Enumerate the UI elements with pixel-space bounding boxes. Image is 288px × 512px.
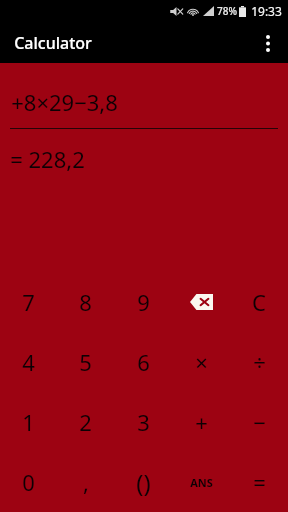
staticText: +8×29−3,8 — [11, 87, 118, 117]
staticText: 9 — [137, 287, 150, 317]
button[interactable]: More options — [248, 23, 288, 63]
staticText: × — [195, 347, 208, 377]
button[interactable]: ÷ — [230, 332, 288, 392]
staticText: () — [136, 466, 151, 499]
staticText: 8 — [79, 287, 92, 317]
button[interactable]: , — [57, 452, 114, 512]
staticText: 7 — [22, 287, 35, 317]
staticText: 19:33 — [251, 3, 282, 19]
staticText: 78% — [217, 4, 237, 18]
staticText: − — [253, 407, 266, 437]
button[interactable]: () — [114, 452, 172, 512]
button[interactable]: 1 — [0, 392, 57, 452]
staticText: 4 — [22, 347, 35, 377]
button[interactable]: 4 — [0, 332, 57, 392]
button[interactable]: − — [230, 392, 288, 452]
staticText: = — [253, 467, 266, 497]
staticText: C — [252, 287, 266, 317]
button[interactable]: Backspace — [172, 272, 230, 332]
button[interactable]: 6 — [114, 332, 172, 392]
staticText: 0 — [22, 467, 35, 497]
staticText: 1 — [22, 407, 35, 437]
staticText: = 228,2 — [10, 144, 85, 174]
staticText: 2 — [79, 407, 92, 437]
staticText: , — [83, 467, 89, 497]
staticText: + — [195, 407, 208, 437]
button[interactable]: × — [172, 332, 230, 392]
button[interactable]: 9 — [114, 272, 172, 332]
button[interactable]: 8 — [57, 272, 114, 332]
button[interactable]: = — [230, 452, 288, 512]
staticText: Calculator — [14, 32, 92, 54]
button[interactable]: 0 — [0, 452, 57, 512]
staticText: 6 — [137, 347, 150, 377]
staticText: 5 — [79, 347, 92, 377]
button[interactable]: + — [172, 392, 230, 452]
button[interactable]: 7 — [0, 272, 57, 332]
button[interactable]: 2 — [57, 392, 114, 452]
button[interactable]: C — [230, 272, 288, 332]
staticText: ANS — [190, 475, 213, 490]
button[interactable]: ANS — [172, 452, 230, 512]
button[interactable]: 5 — [57, 332, 114, 392]
staticText: 3 — [137, 407, 150, 437]
staticText: ÷ — [253, 347, 266, 377]
button[interactable]: 3 — [114, 392, 172, 452]
